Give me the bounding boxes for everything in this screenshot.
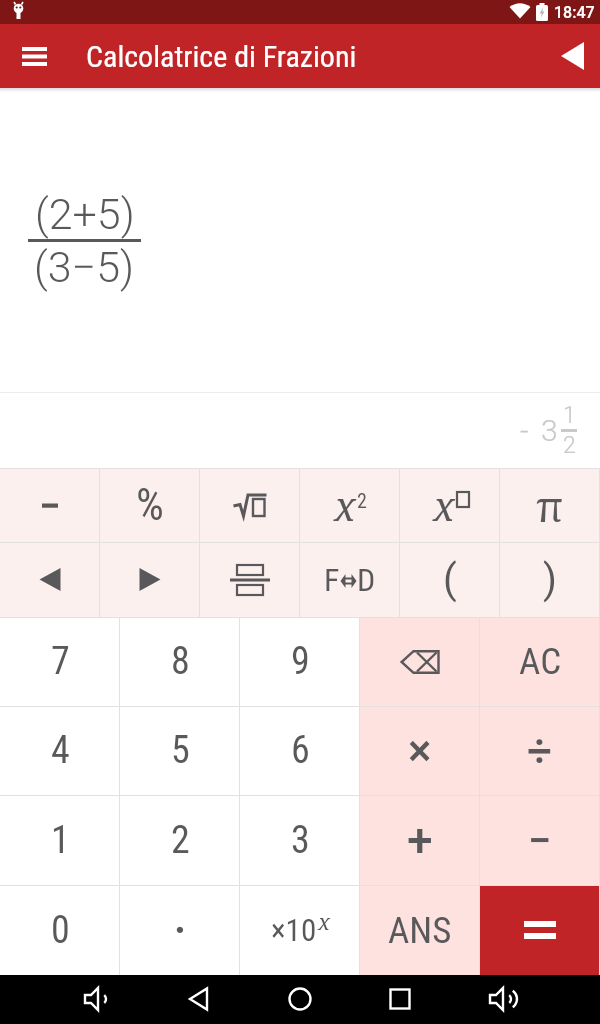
- staticText: D: [357, 561, 376, 599]
- staticText: %: [136, 479, 164, 531]
- button[interactable]: ·: [120, 885, 240, 975]
- button[interactable]: 2: [120, 795, 240, 885]
- button[interactable]: AC: [480, 617, 600, 706]
- staticText: 2: [357, 489, 367, 512]
- button[interactable]: [11, 32, 59, 80]
- staticText: π: [536, 477, 564, 534]
- button[interactable]: x: [400, 468, 500, 542]
- staticText: 9: [291, 639, 310, 684]
- staticText: 3: [541, 413, 558, 448]
- button[interactable]: 0: [0, 885, 120, 975]
- staticText: ANS: [388, 909, 452, 952]
- button[interactable]: ANS: [360, 885, 480, 975]
- staticText: 7: [51, 639, 70, 684]
- button[interactable]: [200, 542, 300, 617]
- staticText: 2: [171, 818, 190, 863]
- button[interactable]: [360, 617, 480, 706]
- staticText: 18:47: [554, 3, 595, 22]
- staticText: 2: [563, 432, 576, 459]
- staticText: (3−5): [34, 242, 135, 292]
- staticText: (2+5): [35, 189, 135, 239]
- staticText: x: [318, 906, 331, 936]
- staticText: ·: [174, 907, 187, 954]
- staticText: 8: [171, 639, 190, 684]
- button[interactable]: π: [500, 468, 600, 542]
- staticText: (: [443, 556, 457, 603]
- staticText: F: [324, 561, 340, 599]
- button[interactable]: [73, 985, 121, 1013]
- staticText: -: [520, 413, 529, 448]
- button[interactable]: [200, 468, 300, 542]
- button[interactable]: [376, 985, 424, 1013]
- button[interactable]: ×: [360, 706, 480, 795]
- staticText: Calcolatrice di Frazioni: [86, 39, 357, 74]
- staticText: ×: [408, 725, 432, 777]
- button[interactable]: ÷: [480, 706, 600, 795]
- button[interactable]: ): [500, 542, 600, 617]
- button[interactable]: 7: [0, 617, 120, 706]
- staticText: ÷: [527, 725, 553, 777]
- button[interactable]: 8: [120, 617, 240, 706]
- staticText: 3: [291, 818, 310, 863]
- button[interactable]: [548, 32, 596, 80]
- button[interactable]: [0, 468, 100, 542]
- staticText: −: [528, 816, 552, 865]
- button[interactable]: −: [480, 795, 600, 885]
- button[interactable]: 5: [120, 706, 240, 795]
- button[interactable]: 9: [240, 617, 360, 706]
- button[interactable]: 4: [0, 706, 120, 795]
- button[interactable]: 1: [0, 795, 120, 885]
- staticText: 6: [291, 728, 310, 773]
- staticText: 5: [171, 728, 190, 773]
- button[interactable]: F: [300, 542, 400, 617]
- button[interactable]: [276, 985, 324, 1013]
- button[interactable]: ×10: [240, 885, 360, 975]
- button[interactable]: +: [360, 795, 480, 885]
- button[interactable]: x: [300, 468, 400, 542]
- staticText: ): [543, 556, 557, 603]
- staticText: AC: [519, 640, 562, 683]
- staticText: 4: [51, 728, 70, 773]
- button[interactable]: [100, 542, 200, 617]
- button[interactable]: (: [400, 542, 500, 617]
- staticText: 1: [563, 402, 576, 429]
- staticText: ×10: [271, 912, 317, 948]
- staticText: +: [407, 813, 433, 867]
- staticText: 1: [51, 818, 70, 863]
- button[interactable]: [0, 542, 100, 617]
- button[interactable]: [478, 985, 526, 1013]
- button[interactable]: [175, 985, 223, 1013]
- staticText: x: [433, 478, 455, 532]
- button[interactable]: [480, 885, 600, 975]
- staticText: 0: [51, 908, 70, 953]
- button[interactable]: %: [100, 468, 200, 542]
- button[interactable]: 6: [240, 706, 360, 795]
- staticText: x: [334, 478, 356, 532]
- button[interactable]: 3: [240, 795, 360, 885]
